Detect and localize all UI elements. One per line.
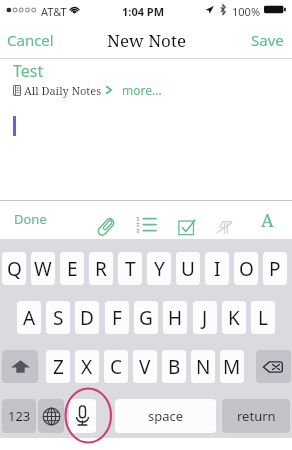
button[interactable]: I xyxy=(205,252,229,285)
button[interactable]: Done xyxy=(14,199,47,239)
button[interactable]: M xyxy=(220,350,244,383)
button[interactable]: O xyxy=(234,252,258,285)
button[interactable]: 123 xyxy=(2,399,36,433)
button[interactable]: P xyxy=(263,252,287,285)
staticText: space xyxy=(148,407,184,425)
staticText: D xyxy=(80,305,94,331)
button[interactable]: return xyxy=(222,399,290,433)
staticText: K xyxy=(228,305,240,331)
staticText: I xyxy=(214,256,221,282)
button[interactable]: T xyxy=(118,252,142,285)
staticText: 100% xyxy=(232,4,261,19)
button[interactable]: Shift xyxy=(2,350,38,383)
staticText: L xyxy=(258,305,268,331)
button[interactable]: Text format xyxy=(255,207,280,233)
button[interactable]: All Daily Notes xyxy=(13,82,162,98)
staticText: S xyxy=(53,305,64,331)
staticText: 1:04 PM xyxy=(122,4,165,19)
button[interactable]: A xyxy=(17,301,41,334)
staticText: return xyxy=(237,407,276,425)
button[interactable]: B xyxy=(162,350,186,383)
staticText: 123 xyxy=(8,407,31,425)
staticText: Z xyxy=(53,354,64,380)
staticText: U xyxy=(181,256,195,282)
button[interactable]: Next keyboard xyxy=(38,399,64,433)
staticText: R xyxy=(95,256,107,282)
button[interactable]: R xyxy=(89,252,113,285)
button[interactable]: Attach xyxy=(92,213,120,241)
staticText: Q xyxy=(7,256,22,282)
staticText: All Daily Notes xyxy=(24,83,102,98)
button[interactable]: N xyxy=(191,350,215,383)
button[interactable]: Z xyxy=(46,350,70,383)
staticText: P xyxy=(269,256,281,282)
staticText: W xyxy=(34,256,52,282)
button[interactable]: L xyxy=(251,301,275,334)
staticText: X xyxy=(81,354,93,380)
staticText: more... xyxy=(122,82,162,98)
button[interactable]: G xyxy=(134,301,158,334)
button[interactable]: Q xyxy=(2,252,26,285)
button[interactable]: X xyxy=(75,350,99,383)
button[interactable]: Cancel xyxy=(7,21,59,59)
staticText: E xyxy=(67,256,78,282)
button[interactable]: Bulleted list xyxy=(132,209,160,237)
staticText: N xyxy=(196,354,211,380)
staticText: F xyxy=(112,305,122,331)
button[interactable]: Handwriting xyxy=(212,214,237,239)
button[interactable]: E xyxy=(60,252,84,285)
button[interactable]: Delete xyxy=(256,350,291,383)
staticText: M xyxy=(223,354,241,380)
staticText: Test xyxy=(13,60,44,82)
staticText: H xyxy=(168,305,183,331)
button[interactable]: S xyxy=(46,301,70,334)
staticText: Save xyxy=(251,30,284,50)
staticText: Done xyxy=(14,210,47,228)
button[interactable]: F xyxy=(105,301,129,334)
staticText: B xyxy=(168,354,181,380)
staticText: A xyxy=(261,208,274,233)
button[interactable]: Dictation xyxy=(69,399,96,433)
button[interactable]: space xyxy=(115,399,216,433)
staticText: V xyxy=(139,354,151,380)
button[interactable]: U xyxy=(176,252,200,285)
button[interactable]: Save xyxy=(251,21,284,59)
staticText: G xyxy=(139,305,153,331)
staticText: T xyxy=(125,256,136,282)
button[interactable]: D xyxy=(75,301,99,334)
button[interactable]: W xyxy=(31,252,55,285)
staticText: New Note xyxy=(107,29,186,52)
button[interactable]: K xyxy=(222,301,246,334)
staticText: O xyxy=(239,256,254,282)
button[interactable]: V xyxy=(133,350,157,383)
staticText: A xyxy=(23,305,36,331)
staticText: Cancel xyxy=(7,30,54,50)
button[interactable]: Y xyxy=(147,252,171,285)
button[interactable]: Checklist xyxy=(174,214,199,239)
staticText: J xyxy=(202,305,208,331)
button[interactable]: H xyxy=(163,301,187,334)
staticText: Y xyxy=(154,256,165,282)
button[interactable]: J xyxy=(193,301,217,334)
button[interactable]: C xyxy=(104,350,128,383)
staticText: AT&T xyxy=(41,4,67,19)
button[interactable]: more... xyxy=(122,82,162,98)
staticText: C xyxy=(110,354,123,380)
